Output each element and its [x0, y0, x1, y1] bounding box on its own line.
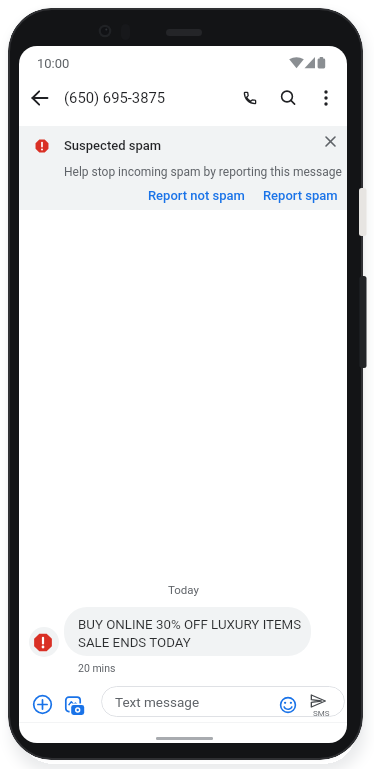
- button[interactable]: [238, 86, 262, 110]
- button[interactable]: [314, 86, 338, 110]
- staticText: (650) 695-3875: [64, 89, 166, 106]
- button[interactable]: Report not spam: [148, 188, 245, 203]
- button[interactable]: SMS: [309, 692, 335, 724]
- button[interactable]: Report spam: [263, 188, 338, 203]
- button[interactable]: Text message: [101, 686, 345, 717]
- button[interactable]: [276, 86, 300, 110]
- button[interactable]: BUY ONLINE 30% OFF LUXURY ITEMS SALE END…: [64, 607, 311, 656]
- button[interactable]: [65, 696, 86, 717]
- staticText: Text message: [115, 694, 200, 710]
- staticText: SMS: [313, 709, 330, 718]
- staticText: Help stop incoming spam by reporting thi…: [64, 165, 342, 179]
- staticText: 20 mins: [78, 662, 116, 674]
- staticText: Today: [168, 583, 199, 596]
- button[interactable]: [279, 696, 297, 714]
- staticText: 10:00: [37, 56, 70, 71]
- button[interactable]: [32, 694, 53, 715]
- staticText: BUY ONLINE 30% OFF LUXURY ITEMS SALE END…: [78, 617, 302, 650]
- button[interactable]: [28, 86, 52, 110]
- staticText: Suspected spam: [64, 138, 162, 153]
- button[interactable]: [322, 133, 339, 150]
